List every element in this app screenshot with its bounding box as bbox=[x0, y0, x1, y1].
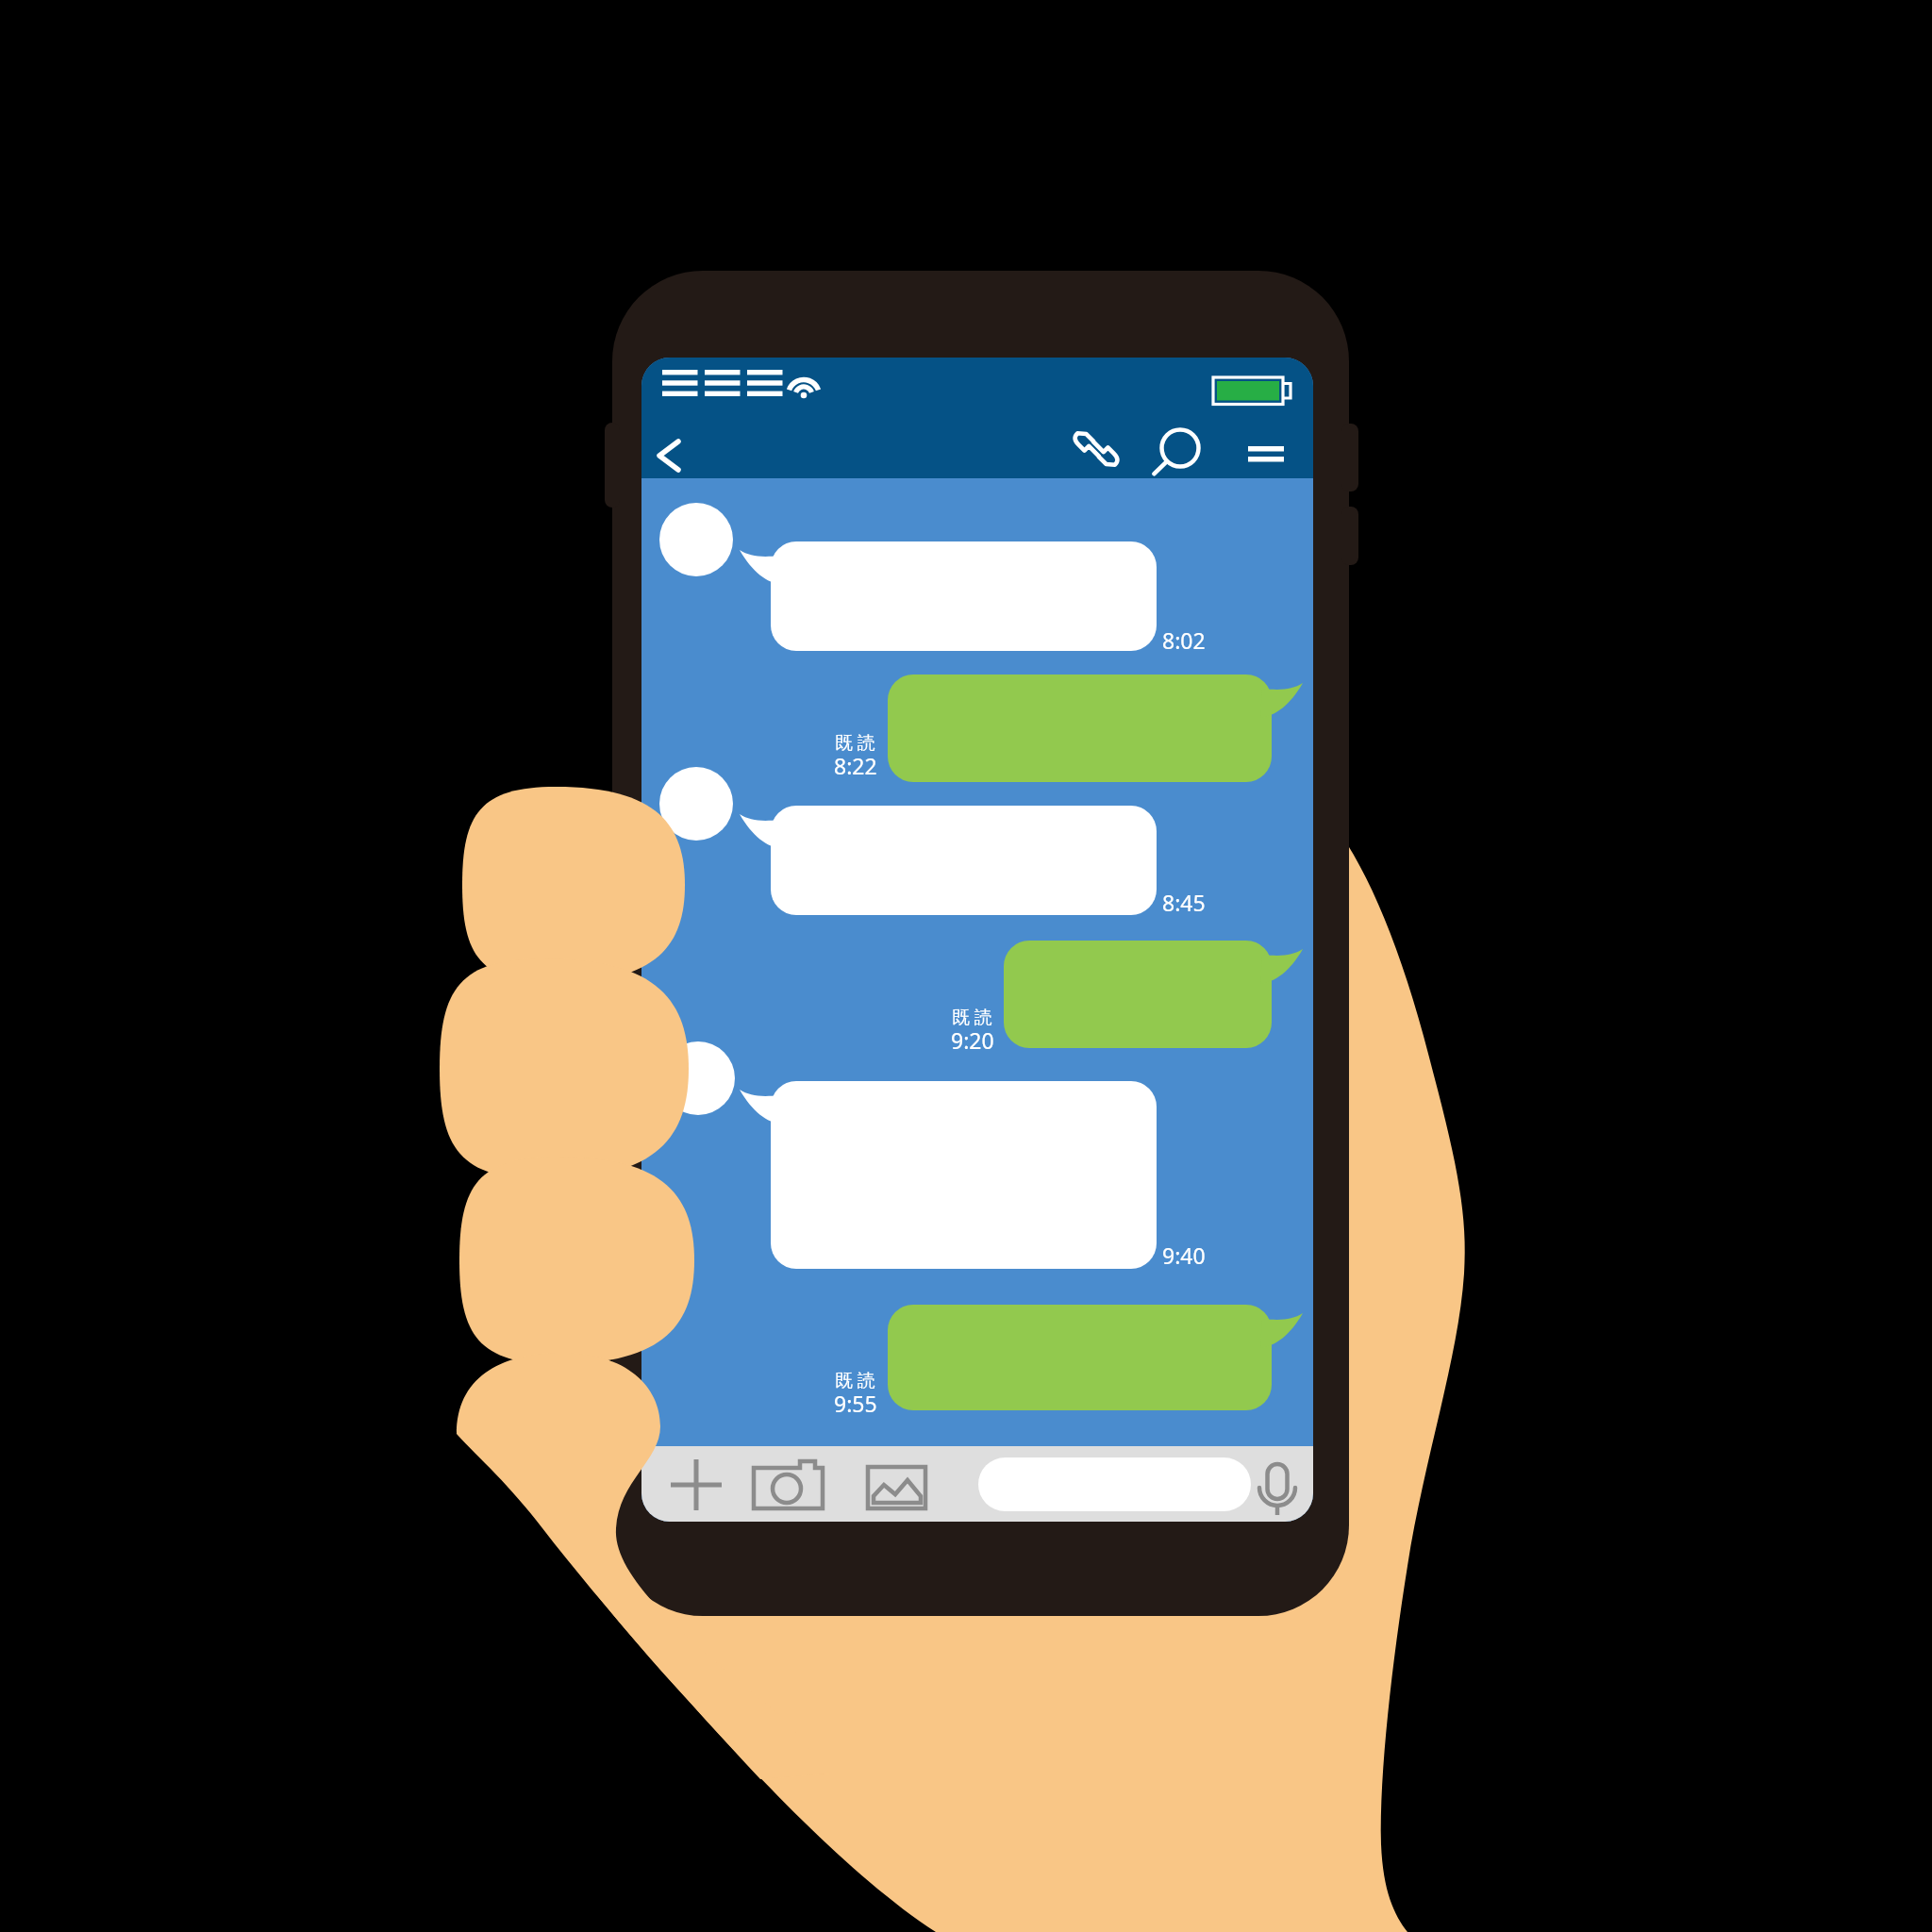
button[interactable]: Add attachment bbox=[666, 1457, 726, 1512]
button[interactable]: Camera bbox=[749, 1453, 826, 1515]
button[interactable]: Your message, read, 9:20 bbox=[1004, 941, 1272, 1048]
button[interactable]: Message from contact, 8:02 bbox=[659, 503, 1157, 651]
button[interactable]: Search bbox=[1149, 419, 1211, 481]
staticText: 9:20 bbox=[951, 1025, 994, 1055]
staticText: 既 読 bbox=[835, 1368, 875, 1392]
staticText: 8:45 bbox=[1162, 888, 1206, 917]
staticText: 9:55 bbox=[834, 1389, 877, 1418]
staticText: 既 読 bbox=[835, 730, 875, 755]
button[interactable]: Voice message bbox=[1255, 1455, 1302, 1513]
button[interactable]: Menu bbox=[1241, 432, 1291, 474]
button[interactable]: Message input bbox=[978, 1457, 1251, 1511]
button[interactable]: Message from contact, 8:45 bbox=[659, 767, 1157, 915]
button[interactable]: Your message, read, 8:22 bbox=[888, 675, 1272, 782]
staticText: 8:02 bbox=[1162, 625, 1206, 655]
button[interactable]: Your message, read, 9:55 bbox=[888, 1305, 1272, 1410]
button[interactable]: Back bbox=[647, 425, 708, 485]
button[interactable]: Call bbox=[1068, 421, 1126, 479]
staticText: 既 読 bbox=[952, 1005, 992, 1029]
staticText: 8:22 bbox=[834, 751, 877, 780]
button[interactable]: Photos bbox=[865, 1459, 929, 1510]
staticText: 9:40 bbox=[1162, 1241, 1206, 1270]
button[interactable]: Message from contact, 9:40 bbox=[661, 1041, 1157, 1269]
